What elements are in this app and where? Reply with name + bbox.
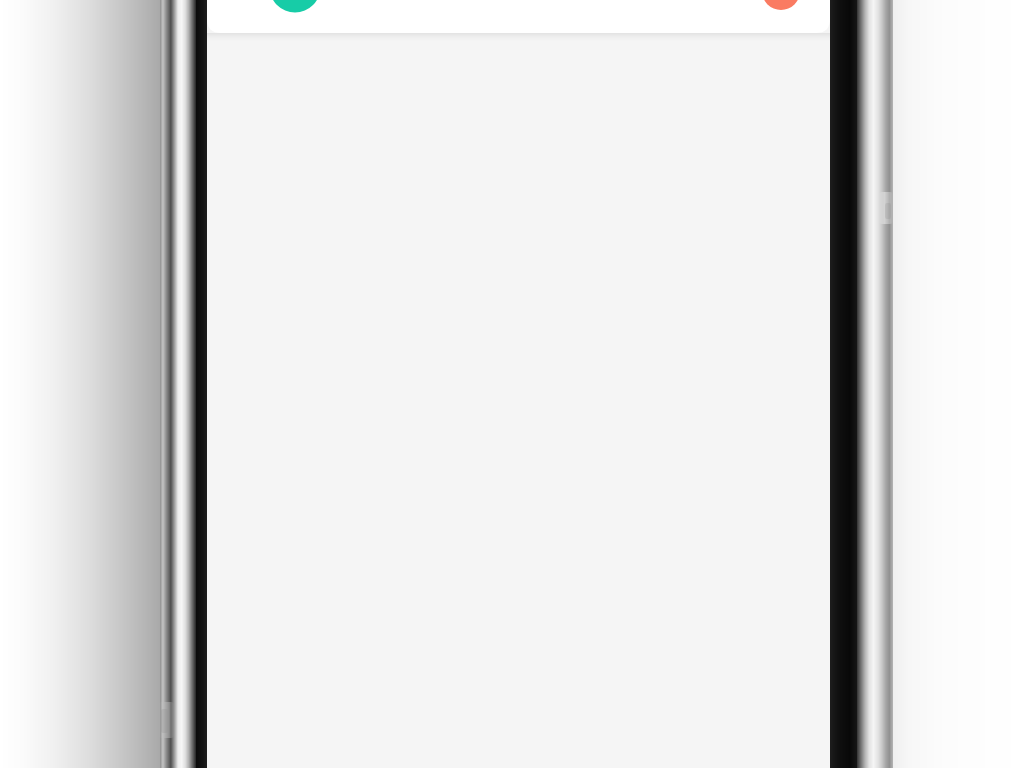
button[interactable]: Accept	[270, 0, 321, 13]
button[interactable]: Decline	[762, 0, 800, 10]
button[interactable]: Card	[207, 0, 830, 33]
